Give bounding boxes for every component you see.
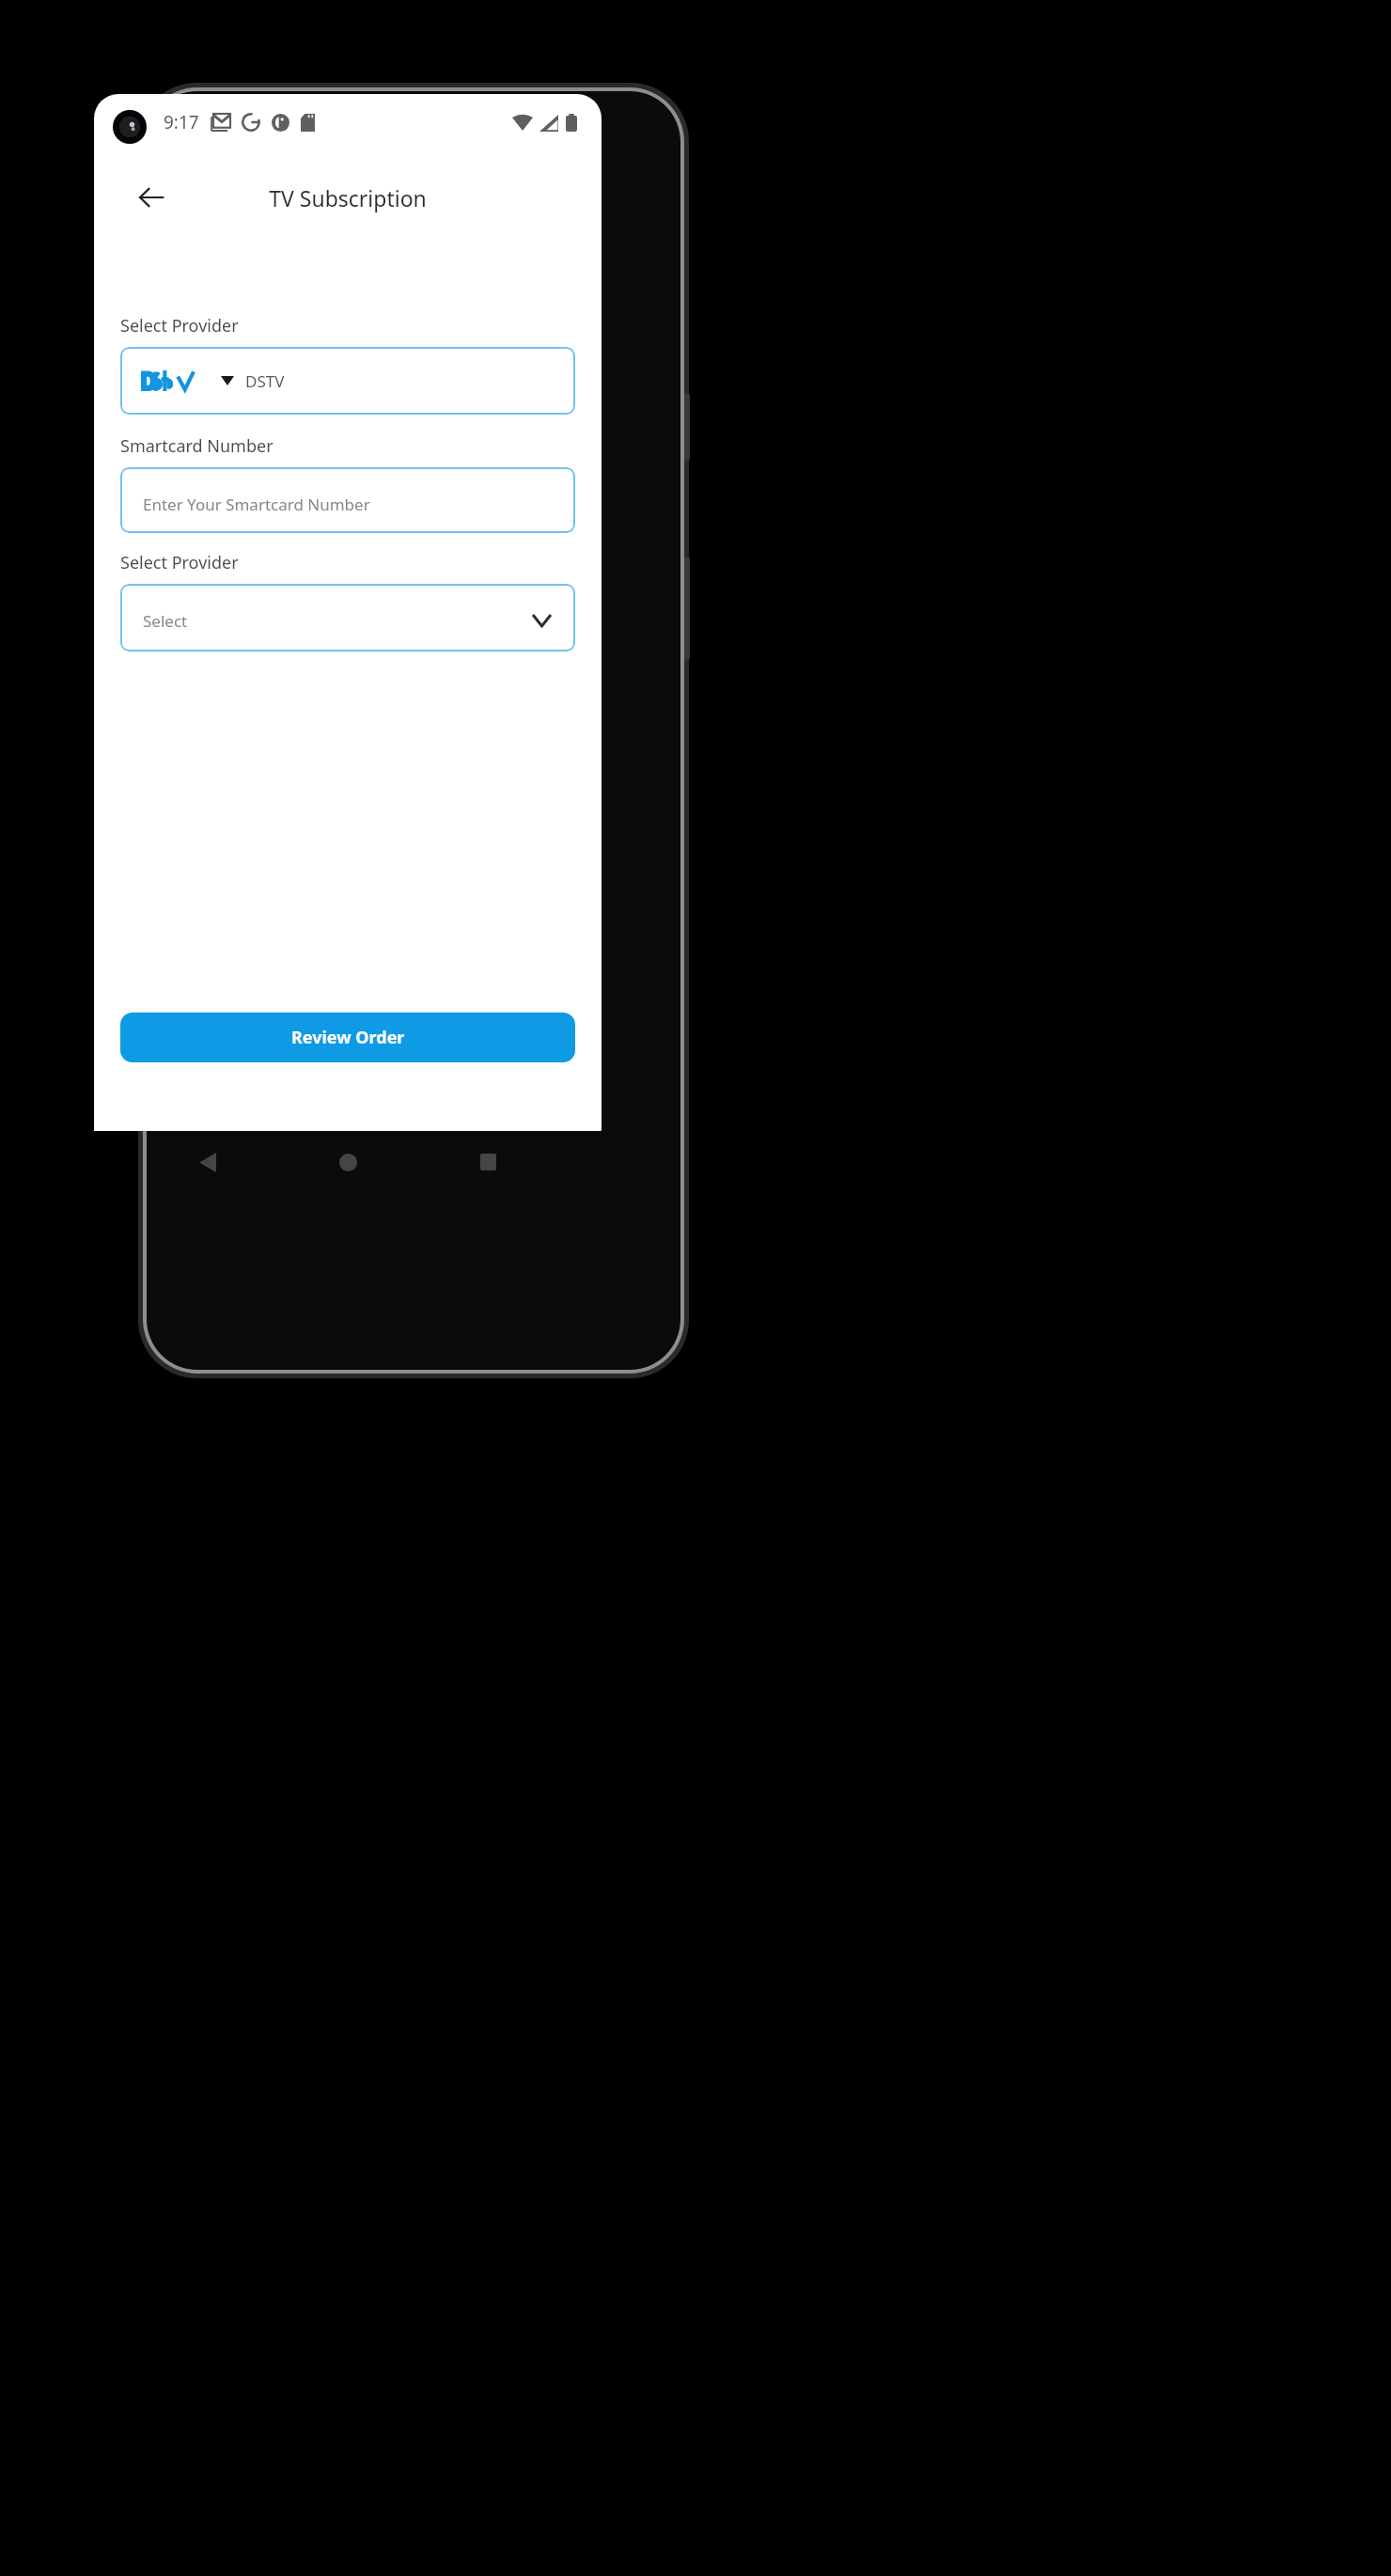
button[interactable]: Back	[130, 176, 173, 219]
button[interactable]: Select	[120, 584, 575, 652]
button[interactable]: Review Order	[120, 1013, 575, 1062]
staticText: 9:17	[164, 110, 199, 134]
button[interactable]: Back	[181, 1136, 234, 1188]
staticText: TV Subscription	[269, 183, 427, 212]
button[interactable]: DSTV	[120, 347, 575, 415]
button[interactable]: Recent apps	[461, 1136, 514, 1188]
button[interactable]: Home	[321, 1136, 374, 1188]
staticText: Select Provider	[120, 551, 239, 574]
staticText: Enter Your Smartcard Number	[143, 494, 370, 515]
staticText: Select Provider	[120, 314, 239, 338]
staticText: Select	[143, 610, 188, 632]
staticText: Smartcard Number	[120, 434, 274, 458]
button[interactable]: Enter Your Smartcard Number	[120, 467, 575, 533]
staticText: DSTV	[245, 370, 285, 392]
staticText: Review Order	[291, 1026, 405, 1049]
